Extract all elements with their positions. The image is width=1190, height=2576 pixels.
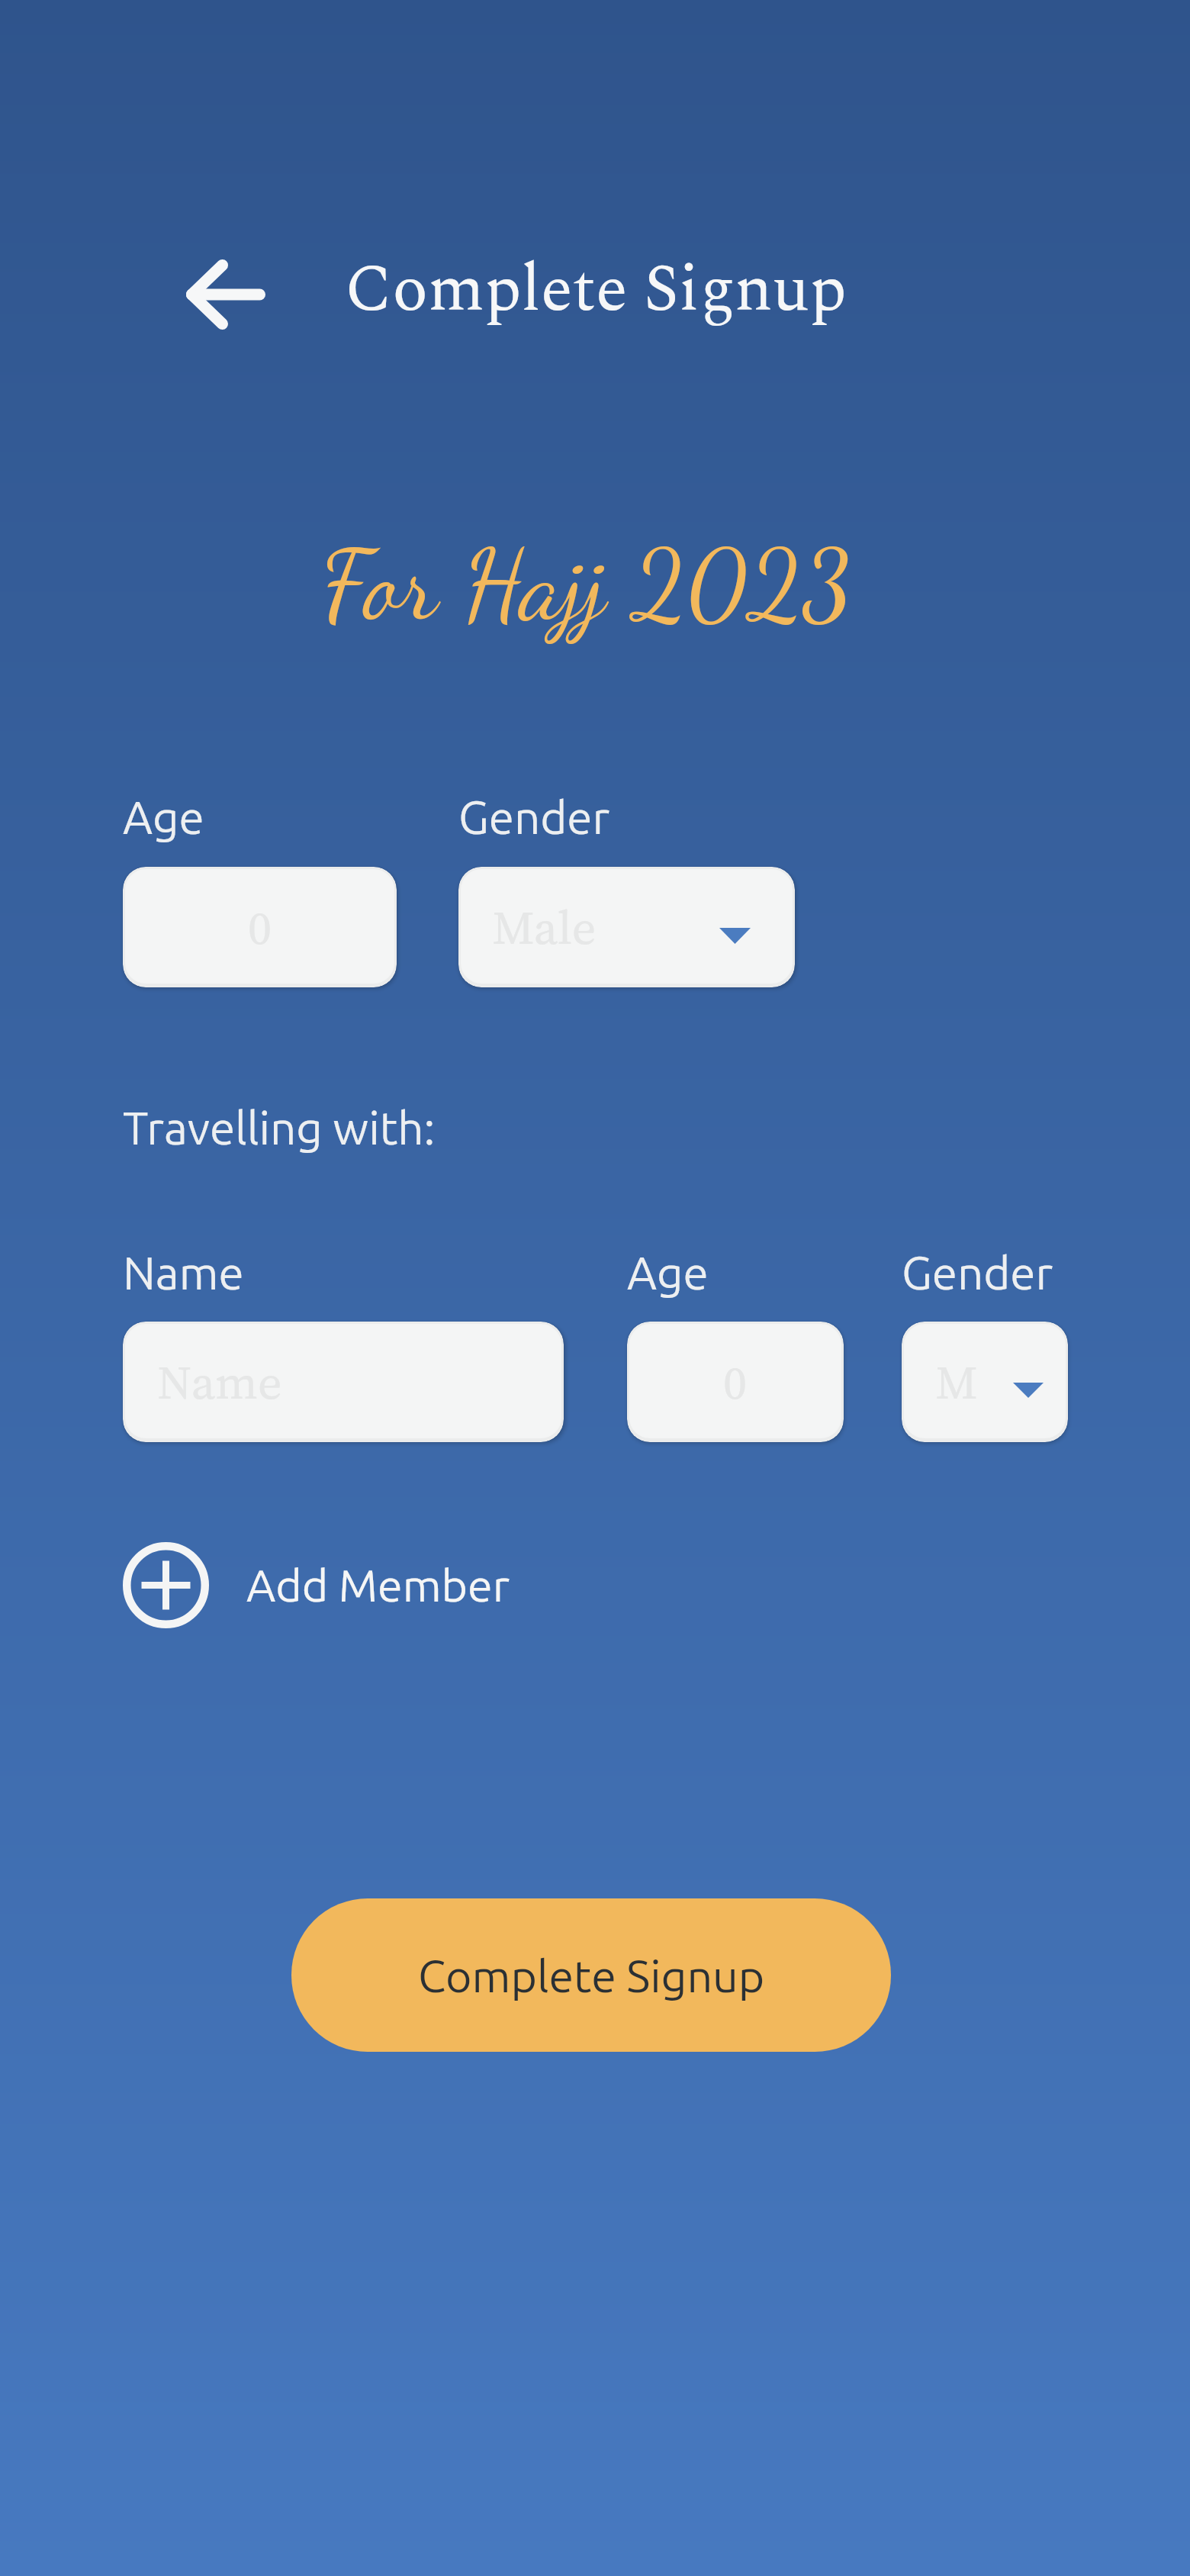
- button[interactable]: Add Member: [118, 1534, 510, 1635]
- staticText: For Hajj 2023: [320, 526, 852, 644]
- staticText: Add Member: [246, 1560, 510, 1610]
- button[interactable]: 0: [123, 867, 397, 987]
- staticText: Travelling with:: [123, 1102, 436, 1153]
- staticText: Complete Signup: [345, 240, 847, 340]
- button[interactable]: Male: [458, 867, 795, 987]
- staticText: Name: [123, 1247, 244, 1298]
- staticText: Age: [123, 791, 204, 842]
- staticText: Age: [627, 1247, 709, 1298]
- staticText: Male: [492, 895, 597, 960]
- button[interactable]: Complete Signup: [345, 240, 847, 340]
- button[interactable]: Name: [123, 1322, 564, 1442]
- button[interactable]: Complete Signup: [291, 1898, 891, 2052]
- staticText: Gender: [902, 1247, 1053, 1298]
- button[interactable]: 0: [627, 1322, 844, 1442]
- staticText: 0: [248, 895, 272, 960]
- button[interactable]: M: [902, 1322, 1068, 1442]
- staticText: 0: [723, 1350, 748, 1415]
- staticText: Gender: [458, 791, 610, 842]
- staticText: Complete Signup: [418, 1950, 765, 2001]
- button[interactable]: Back: [178, 249, 273, 340]
- staticText: Name: [157, 1350, 282, 1415]
- staticText: M: [935, 1350, 978, 1415]
